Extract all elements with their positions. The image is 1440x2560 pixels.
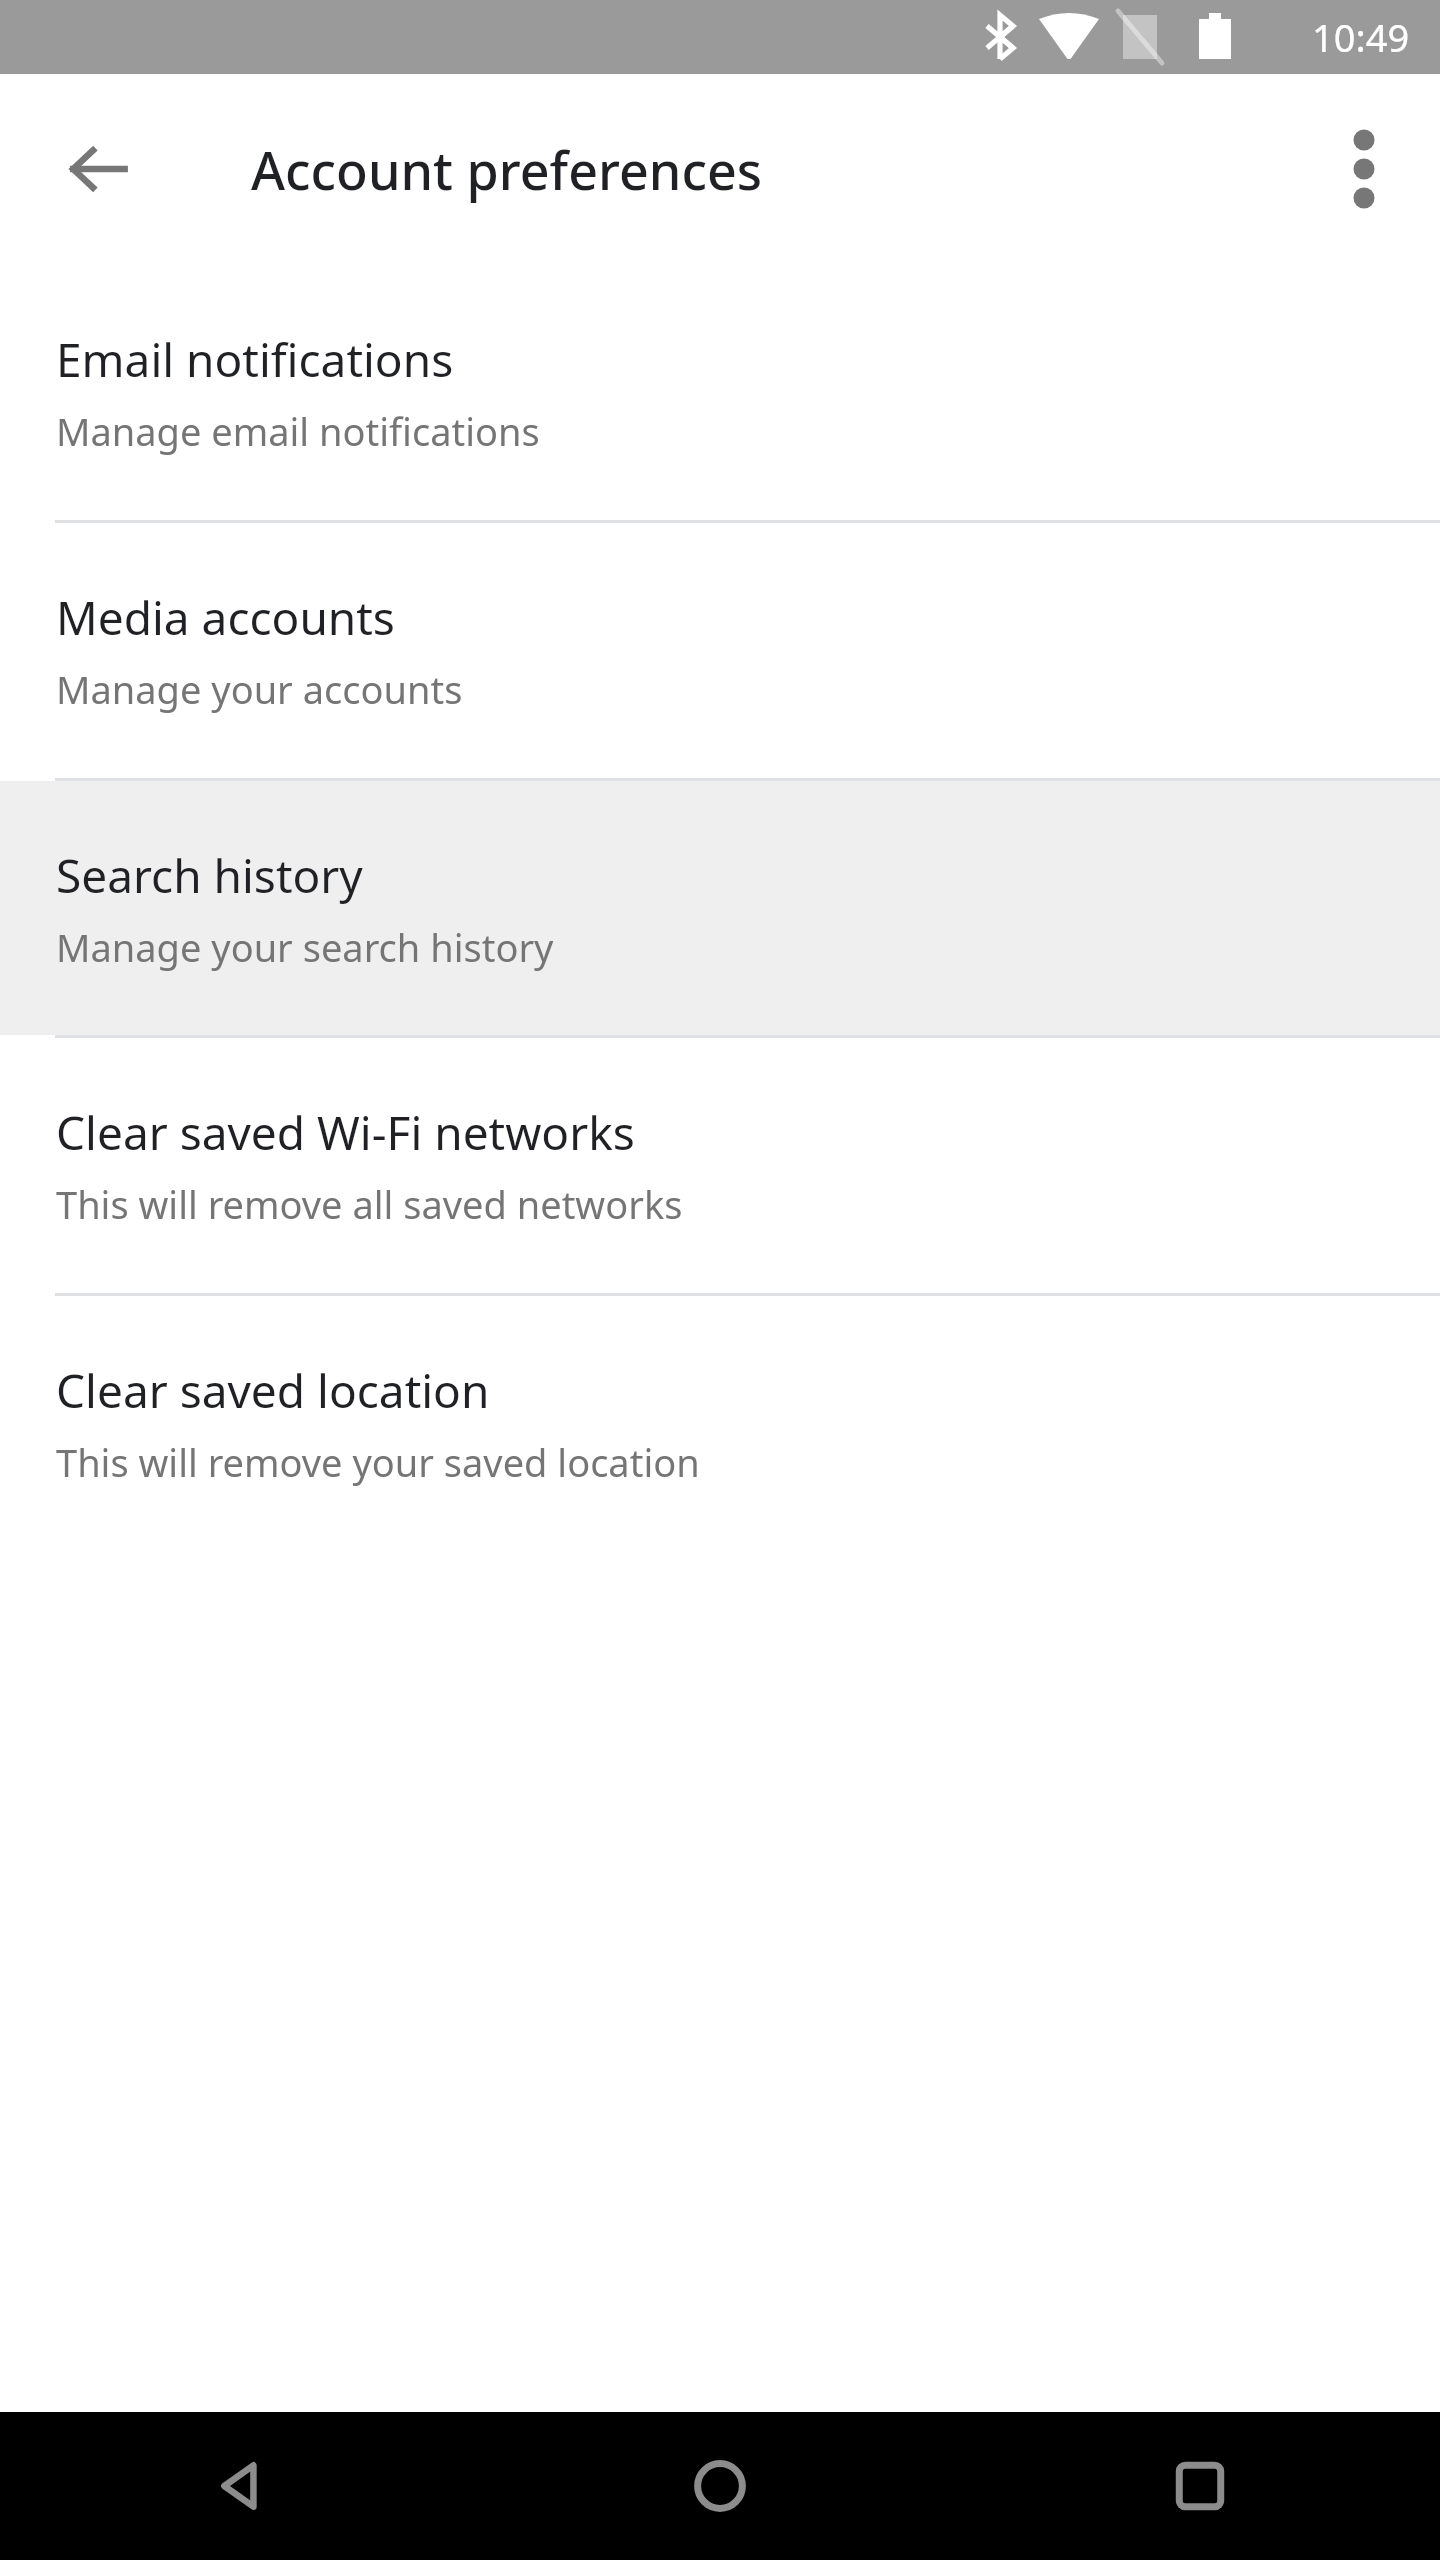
button[interactable]: Navigate up (36, 107, 160, 231)
button[interactable]: More options (1302, 107, 1426, 231)
staticText: This will remove your saved location (56, 1436, 700, 1488)
staticText: Media accounts (56, 586, 395, 649)
staticText: Manage your accounts (56, 663, 463, 715)
staticText: This will remove all saved networks (56, 1178, 683, 1230)
button[interactable]: Media accounts (0, 523, 1440, 778)
staticText: Clear saved location (56, 1359, 490, 1422)
button[interactable]: Search history (0, 781, 1440, 1035)
staticText: Email notifications (56, 328, 454, 391)
staticText: Manage email notifications (56, 405, 540, 457)
staticText: Clear saved Wi-Fi networks (56, 1101, 635, 1164)
button[interactable]: Recent apps (960, 2412, 1440, 2560)
button[interactable]: Clear saved Wi-Fi networks (0, 1038, 1440, 1293)
staticText: 10:49 (1312, 11, 1410, 63)
button[interactable]: Back (0, 2412, 480, 2560)
button[interactable]: Email notifications (0, 265, 1440, 520)
staticText: Search history (56, 844, 363, 907)
button[interactable]: Clear saved location (0, 1296, 1440, 1551)
button[interactable]: Home (480, 2412, 960, 2560)
staticText: Account preferences (251, 134, 763, 205)
staticText: Manage your search history (56, 921, 554, 973)
